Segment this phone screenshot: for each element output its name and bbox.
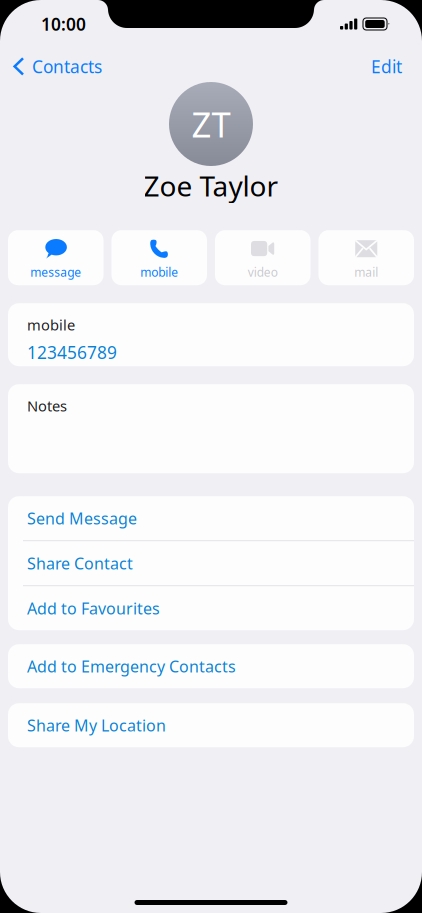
staticText: message xyxy=(30,264,81,280)
staticText: mail xyxy=(354,264,378,280)
button[interactable]: mail xyxy=(318,230,414,285)
staticText: Add to Favourites xyxy=(27,598,160,619)
button[interactable]: Share My Location xyxy=(8,703,414,747)
button[interactable]: Share Contact xyxy=(8,541,414,585)
button[interactable]: Add to Emergency Contacts xyxy=(8,644,414,688)
button[interactable]: Add to Favourites xyxy=(8,586,414,630)
staticText: mobile xyxy=(27,315,75,335)
button[interactable]: message xyxy=(8,230,103,285)
staticText: Notes xyxy=(27,396,67,416)
staticText: video xyxy=(248,264,278,280)
staticText: Share Contact xyxy=(27,553,133,574)
button[interactable]: mobile xyxy=(8,303,414,366)
button[interactable]: Edit xyxy=(351,51,422,82)
staticText: Send Message xyxy=(27,508,137,529)
staticText: Share My Location xyxy=(27,715,166,736)
button[interactable]: Contacts xyxy=(0,51,112,82)
staticText: Zoe Taylor xyxy=(143,167,278,204)
staticText: mobile xyxy=(140,264,178,280)
staticText: Contacts xyxy=(32,55,102,78)
staticText: Edit xyxy=(371,55,402,78)
staticText: Add to Emergency Contacts xyxy=(27,656,236,677)
button[interactable]: video xyxy=(215,230,310,285)
staticText: ZT xyxy=(191,101,230,147)
button[interactable]: mobile xyxy=(111,230,207,285)
button[interactable]: Send Message xyxy=(8,496,414,540)
staticText: 123456789 xyxy=(27,341,117,364)
staticText: 10:00 xyxy=(41,12,86,35)
